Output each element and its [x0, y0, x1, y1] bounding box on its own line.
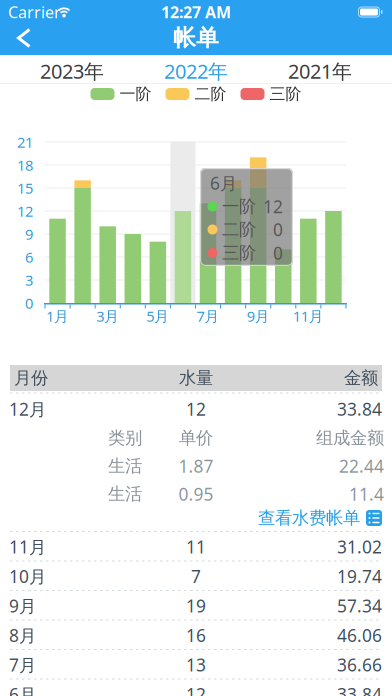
staticText: 组成金额	[316, 427, 384, 449]
staticText: 一阶	[119, 84, 151, 104]
button[interactable]: 9月	[10, 591, 382, 620]
staticText: 7月	[196, 306, 219, 326]
staticText: 三阶	[269, 84, 301, 104]
staticText: 生活	[108, 455, 142, 477]
staticText: 7	[191, 565, 201, 588]
staticText: 46.06	[337, 624, 382, 647]
staticText: 6月	[9, 683, 36, 696]
staticText: 0	[273, 218, 283, 241]
button[interactable]: 10月	[10, 561, 382, 591]
staticText: 8月	[9, 624, 36, 647]
staticText: 12	[17, 201, 33, 221]
staticText: 水量	[179, 367, 213, 389]
staticText: 类别	[108, 427, 142, 449]
staticText: 2022年	[164, 58, 228, 84]
staticText: 0	[25, 293, 33, 313]
staticText: 0.95	[178, 482, 213, 505]
button[interactable]: 7月	[10, 650, 382, 679]
staticText: 6月	[210, 171, 237, 194]
staticText: 18	[17, 155, 33, 175]
staticText: 1月	[46, 306, 69, 326]
staticText: 0	[273, 241, 283, 264]
staticText: 12	[186, 683, 206, 696]
staticText: 11月	[9, 535, 46, 558]
button[interactable]: Back	[8, 19, 39, 56]
staticText: 9月	[247, 306, 270, 326]
staticText: 三阶	[222, 242, 256, 264]
staticText: 10月	[9, 565, 46, 588]
staticText: 19	[186, 594, 206, 617]
staticText: 帐单	[173, 24, 219, 52]
button[interactable]: 11月	[10, 532, 382, 561]
staticText: 2021年	[288, 58, 352, 84]
staticText: 36.66	[337, 653, 382, 676]
staticText: 11	[186, 535, 206, 558]
staticText: 15	[17, 178, 33, 198]
staticText: 5月	[146, 306, 169, 326]
staticText: 金额	[344, 367, 378, 389]
button[interactable]: 查看水费帐单	[258, 507, 382, 529]
staticText: 3	[25, 270, 33, 290]
button[interactable]: 6月	[10, 679, 382, 696]
staticText: 6	[25, 247, 33, 267]
staticText: 2023年	[40, 58, 104, 84]
staticText: 查看水费帐单	[258, 507, 360, 529]
staticText: 3月	[96, 306, 119, 326]
button[interactable]: 8月	[10, 620, 382, 650]
staticText: 21	[17, 132, 33, 152]
button[interactable]: 12月	[10, 394, 382, 424]
staticText: 12月	[9, 397, 46, 420]
staticText: 11月	[293, 306, 324, 326]
staticText: 二阶	[222, 219, 256, 240]
staticText: 9月	[9, 594, 36, 617]
staticText: 二阶	[194, 84, 226, 104]
staticText: 12	[186, 397, 206, 420]
button[interactable]: 2022年	[144, 52, 248, 90]
staticText: 月份	[14, 367, 48, 389]
staticText: 13	[186, 653, 206, 676]
staticText: 57.34	[337, 594, 382, 617]
staticText: 22.44	[339, 454, 384, 477]
staticText: 单价	[179, 427, 213, 449]
staticText: 1.87	[178, 454, 213, 477]
staticText: 12	[263, 195, 283, 218]
button[interactable]: 2021年	[268, 52, 372, 90]
button[interactable]: 2023年	[20, 52, 124, 90]
staticText: 9	[25, 224, 33, 244]
staticText: 33.84	[337, 683, 382, 696]
staticText: 33.84	[337, 397, 382, 420]
staticText: 31.02	[337, 535, 382, 558]
staticText: 一阶	[222, 196, 256, 217]
staticText: 19.74	[337, 565, 382, 588]
staticText: 16	[186, 624, 206, 647]
staticText: 12:27 AM	[161, 1, 231, 23]
staticText: 7月	[9, 653, 36, 676]
staticText: 11.4	[349, 482, 384, 505]
staticText: 生活	[108, 483, 142, 505]
staticText: Carrier	[8, 1, 61, 23]
